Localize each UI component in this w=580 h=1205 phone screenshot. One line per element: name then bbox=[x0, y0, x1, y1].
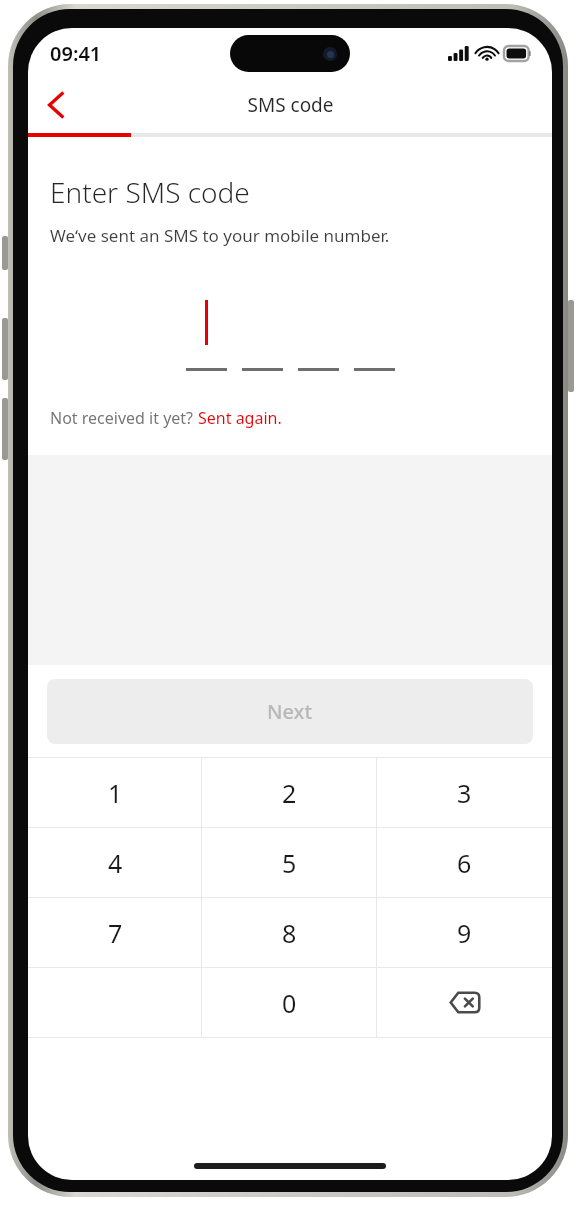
staticText: We‘ve sent an SMS to your mobile number. bbox=[50, 224, 390, 247]
button[interactable]: 0 bbox=[202, 968, 377, 1037]
button[interactable]: 4 bbox=[28, 828, 202, 897]
staticText: 5 bbox=[282, 846, 297, 880]
staticText: 9 bbox=[457, 916, 472, 950]
staticText: 8 bbox=[282, 916, 297, 950]
staticText: Not received it yet? bbox=[50, 407, 198, 429]
button[interactable]: 2 bbox=[202, 758, 377, 827]
staticText: SMS code bbox=[247, 92, 334, 118]
staticText: 0 bbox=[282, 986, 297, 1020]
staticText: Sent again. bbox=[198, 407, 282, 429]
button[interactable]: Backspace bbox=[377, 968, 552, 1037]
staticText: 7 bbox=[108, 916, 123, 950]
button[interactable] bbox=[186, 297, 227, 371]
button[interactable] bbox=[298, 297, 339, 371]
staticText: 1 bbox=[108, 776, 123, 810]
button[interactable]: 1 bbox=[28, 758, 202, 827]
button[interactable] bbox=[242, 297, 283, 371]
button[interactable]: 9 bbox=[377, 898, 552, 967]
staticText: 6 bbox=[457, 846, 472, 880]
staticText: 09:41 bbox=[50, 40, 102, 67]
button[interactable]: 7 bbox=[28, 898, 202, 967]
button[interactable]: Next bbox=[47, 679, 533, 744]
button[interactable] bbox=[354, 297, 395, 371]
button[interactable]: 5 bbox=[202, 828, 377, 897]
button[interactable]: Back bbox=[28, 78, 82, 132]
staticText: Next bbox=[267, 698, 313, 725]
button[interactable]: Sent again. bbox=[198, 407, 282, 429]
staticText: 2 bbox=[282, 776, 297, 810]
button[interactable]: 3 bbox=[377, 758, 552, 827]
staticText: Enter SMS code bbox=[50, 173, 250, 211]
staticText: 3 bbox=[457, 776, 472, 810]
button[interactable]: 6 bbox=[377, 828, 552, 897]
staticText: 4 bbox=[108, 846, 123, 880]
button[interactable]: 8 bbox=[202, 898, 377, 967]
